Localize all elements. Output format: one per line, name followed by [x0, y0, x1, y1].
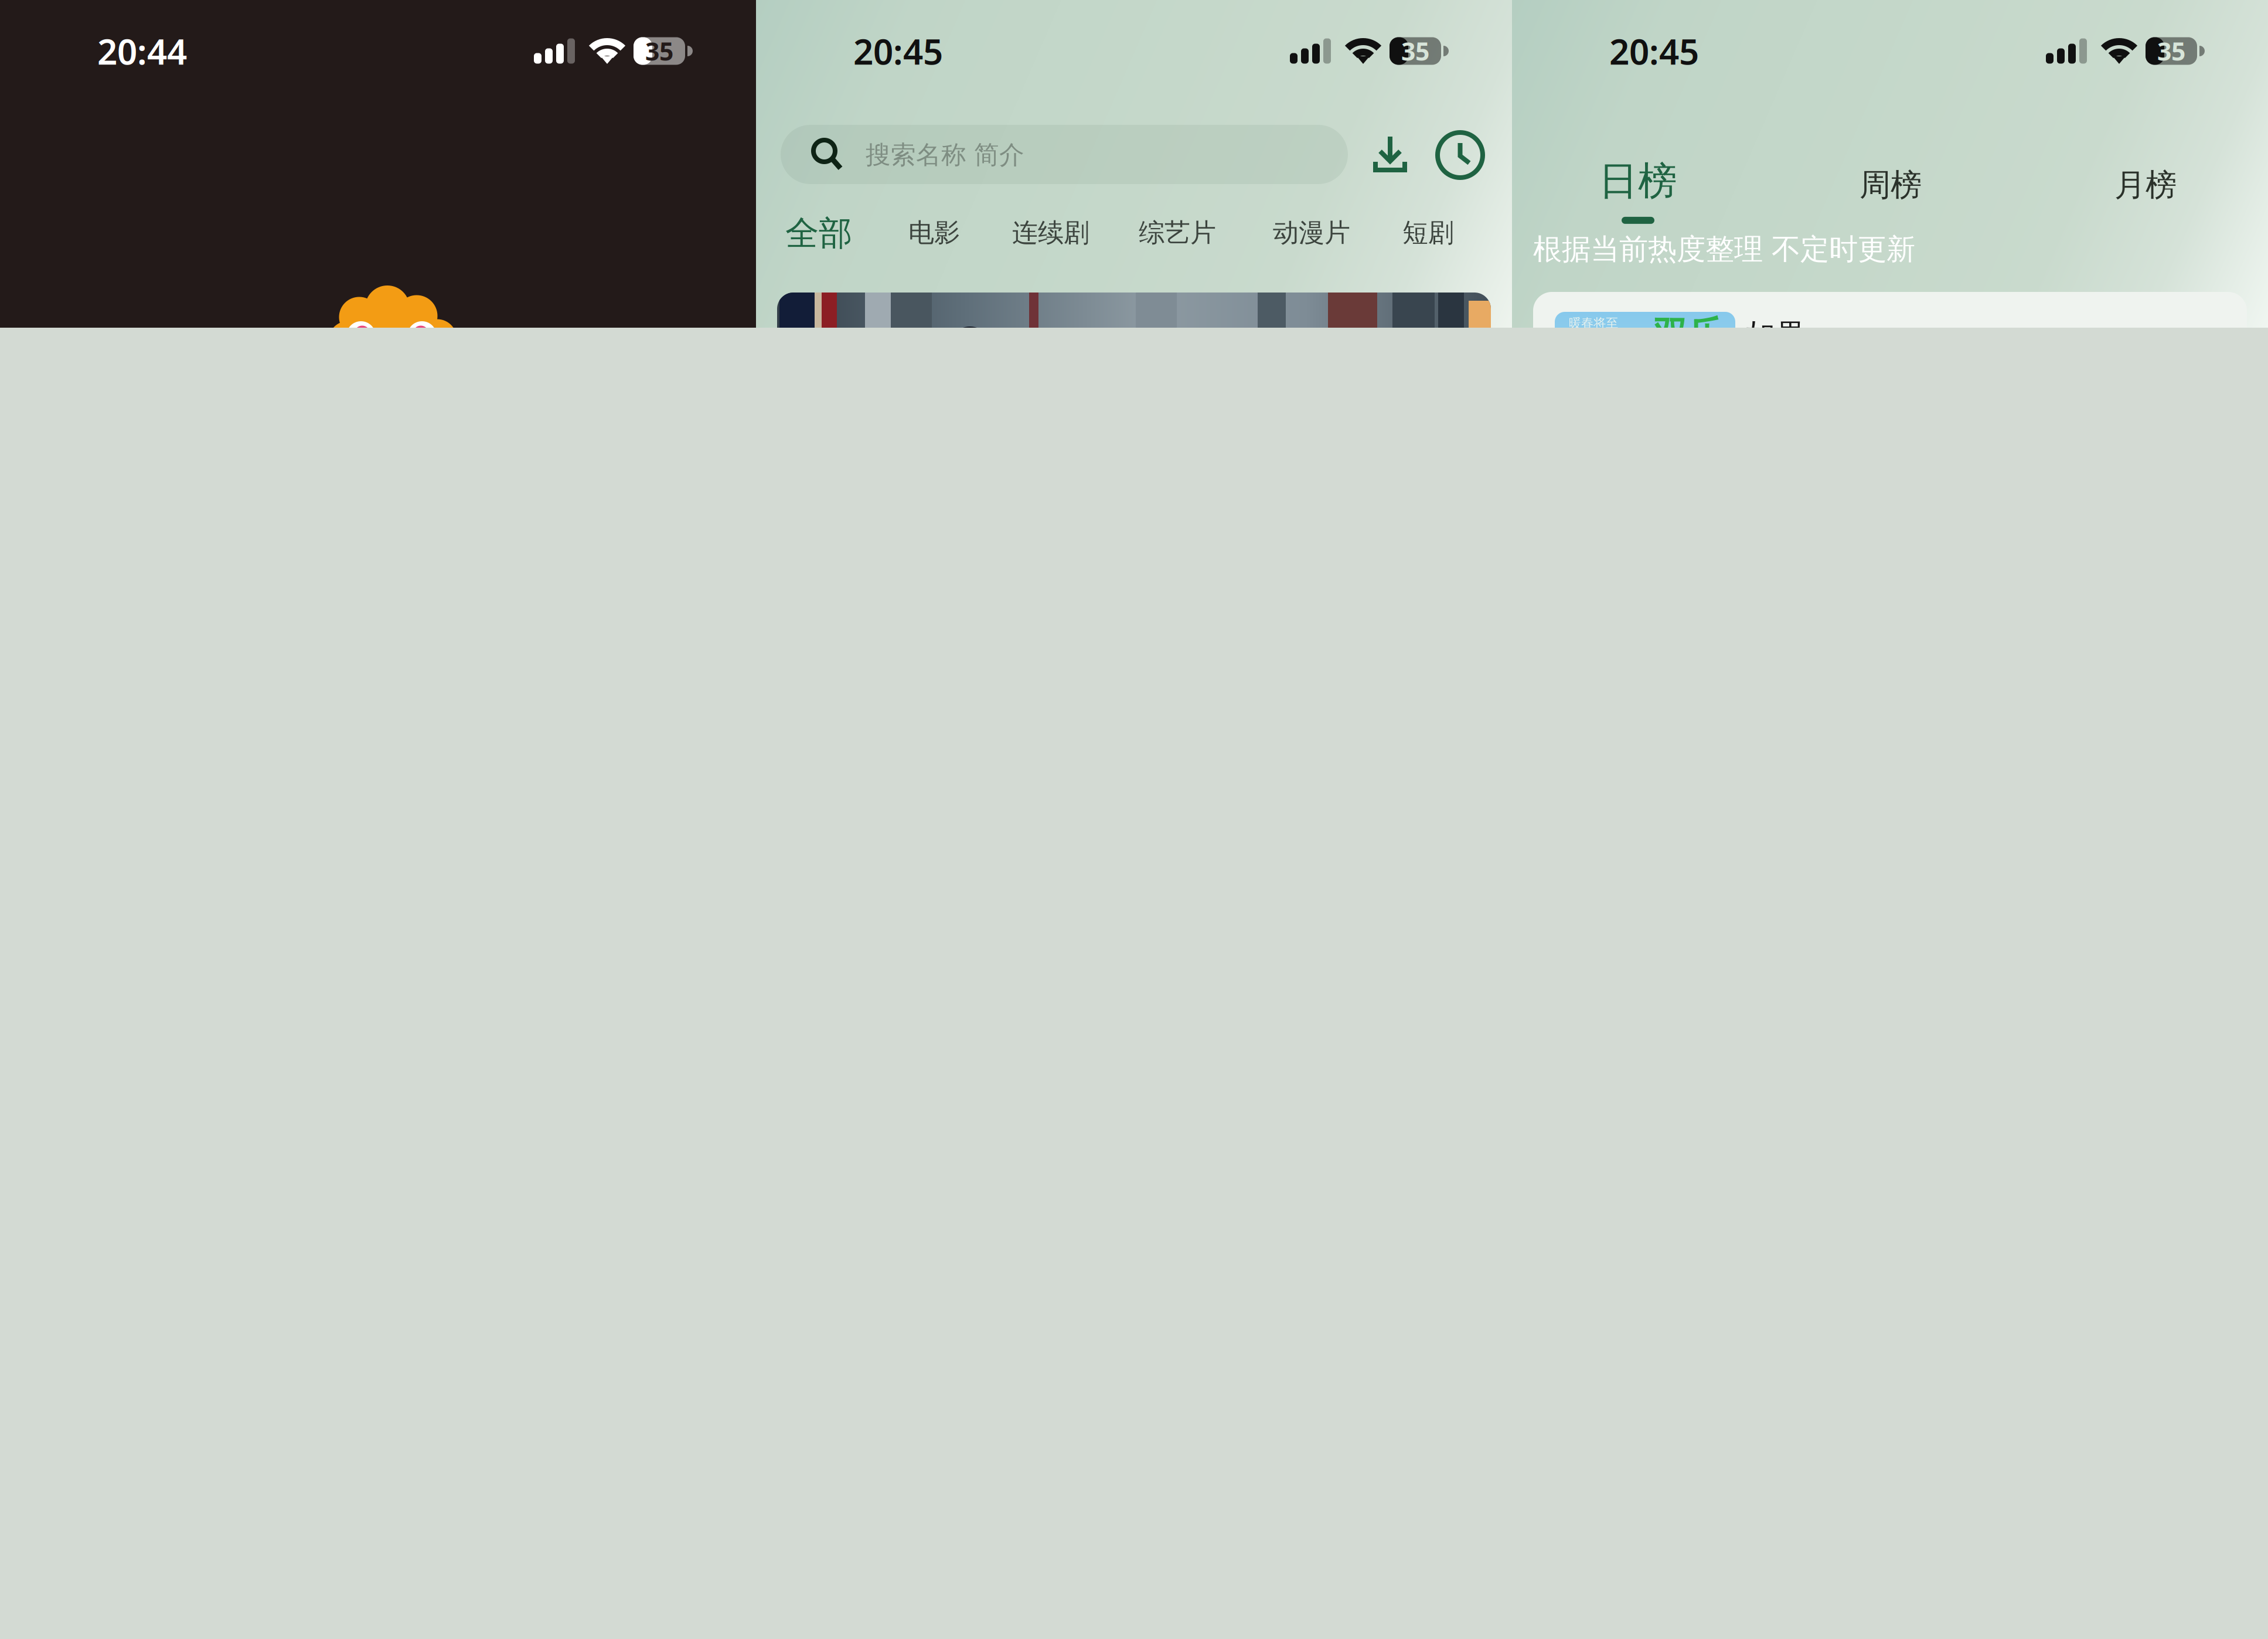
button[interactable]: 月榜 — [2114, 166, 2177, 204]
button[interactable]: 连续剧 — [1012, 217, 1089, 249]
button[interactable]: Downloads — [1373, 136, 1408, 172]
staticText: 综艺片 — [1139, 217, 1216, 249]
button[interactable]: 动漫片 — [1273, 217, 1350, 249]
button[interactable]: 短剧 — [1402, 217, 1454, 249]
staticText: 全部 — [785, 213, 852, 254]
staticText: 暖春将至 — [1569, 315, 1618, 331]
staticText: 搜索名称 简介 — [866, 140, 1024, 170]
button[interactable]: 电影 — [908, 217, 960, 249]
staticText: 连续剧 — [1012, 217, 1089, 249]
button[interactable]: 日榜 — [1599, 157, 1677, 224]
staticText: 月榜 — [2114, 166, 2177, 204]
button[interactable]: 全部 — [785, 213, 852, 254]
button[interactable]: App card: rankings — [1512, 0, 2268, 328]
button[interactable]: History — [1438, 132, 1483, 178]
button[interactable]: 综艺片 — [1139, 217, 1216, 249]
staticText: 如果 — [1746, 317, 1806, 353]
staticText: 35 — [1401, 34, 1429, 68]
staticText: 20:45 — [853, 28, 943, 74]
staticText: 日榜 — [1599, 157, 1677, 205]
staticText: 20:45 — [1609, 28, 1699, 74]
staticText: 动漫片 — [1273, 217, 1350, 249]
button[interactable]: App card: browse — [756, 0, 1512, 328]
staticText: 双乐 — [1653, 313, 1722, 355]
staticText: 35 — [645, 34, 673, 68]
button[interactable]: 暖春将至 — [1533, 292, 2247, 421]
staticText: 根据当前热度整理 不定时更新 — [1533, 232, 1915, 267]
staticText: 35 — [2157, 34, 2185, 68]
staticText: 周榜 — [1860, 166, 1922, 204]
button[interactable]: App card: splash screen — [0, 0, 756, 328]
button[interactable]: 搜索名称 简介 — [781, 125, 1348, 184]
staticText: 短剧 — [1402, 217, 1454, 249]
staticText: 20:44 — [97, 28, 187, 74]
button[interactable]: 周榜 — [1860, 166, 1922, 204]
staticText: 电影 — [908, 217, 960, 249]
